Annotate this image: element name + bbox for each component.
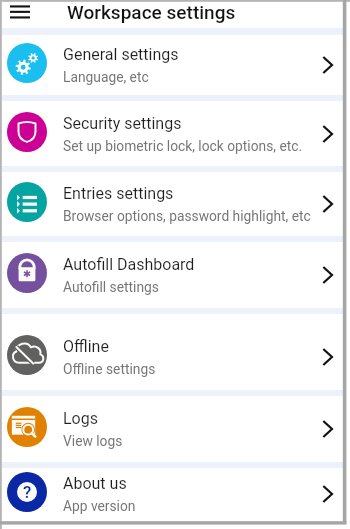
staticText: Offline settings bbox=[63, 361, 156, 377]
staticText: Autofill settings bbox=[63, 279, 159, 295]
staticText: Workspace settings bbox=[67, 1, 236, 23]
staticText: Autofill Dashboard bbox=[63, 255, 195, 274]
button[interactable]: Open navigation menu bbox=[4, 2, 38, 26]
button[interactable]: Logs bbox=[2, 396, 343, 462]
button[interactable]: Autofill Dashboard bbox=[2, 242, 343, 308]
staticText: ? bbox=[23, 482, 32, 502]
staticText: Logs bbox=[63, 409, 98, 428]
button[interactable]: Offline bbox=[2, 314, 343, 390]
staticText: App version bbox=[63, 498, 136, 514]
button[interactable]: Entries settings bbox=[2, 172, 343, 236]
staticText: General settings bbox=[63, 45, 179, 64]
staticText: View logs bbox=[63, 433, 123, 449]
staticText: Offline bbox=[63, 337, 109, 356]
button[interactable]: General settings bbox=[2, 35, 343, 95]
staticText: Security settings bbox=[63, 114, 182, 133]
staticText: Set up biometric lock, lock options, etc… bbox=[63, 138, 303, 154]
staticText: Browser options, password highlight, etc bbox=[63, 208, 311, 224]
button[interactable]: Security settings bbox=[2, 101, 343, 166]
button[interactable]: ? bbox=[2, 468, 343, 520]
staticText: Entries settings bbox=[63, 184, 174, 203]
staticText: Language, etc bbox=[63, 69, 149, 85]
staticText: About us bbox=[63, 474, 127, 493]
